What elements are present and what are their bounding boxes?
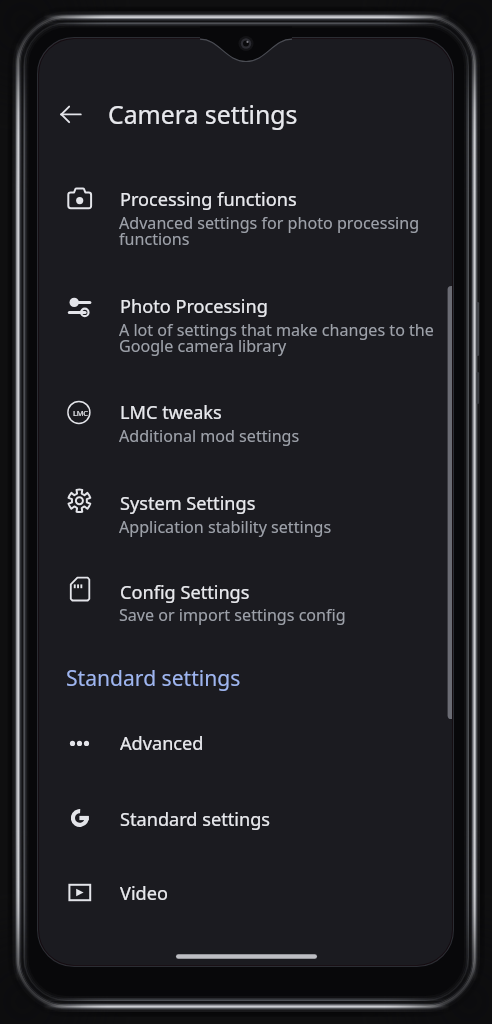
- button[interactable]: [44, 561, 440, 625]
- staticText: Camera settings: [108, 97, 452, 131]
- button[interactable]: [44, 279, 440, 365]
- button[interactable]: [44, 171, 440, 257]
- button[interactable]: [58, 659, 258, 699]
- staticText: Processing functions: [120, 187, 452, 212]
- staticText: Google camera library: [119, 335, 452, 357]
- staticText: Advanced settings for photo processing: [119, 212, 452, 234]
- button[interactable]: [44, 790, 440, 832]
- staticText: Advanced: [120, 731, 452, 756]
- staticText: Save or import settings config: [119, 604, 452, 626]
- staticText: Video: [120, 881, 452, 906]
- button[interactable]: [44, 715, 440, 757]
- button[interactable]: [44, 864, 440, 906]
- staticText: Standard settings: [120, 807, 452, 832]
- staticText: System Settings: [120, 491, 452, 516]
- staticText: A lot of settings that make changes to t…: [119, 319, 452, 341]
- staticText: Config Settings: [120, 580, 452, 605]
- staticText: LMC: [73, 408, 88, 418]
- button[interactable]: Navigate up: [48, 90, 96, 138]
- button[interactable]: [44, 385, 440, 449]
- staticText: LMC tweaks: [120, 400, 452, 425]
- staticText: Additional mod settings: [119, 425, 452, 447]
- staticText: Application stability settings: [119, 516, 452, 538]
- staticText: Standard settings: [66, 663, 426, 692]
- staticText: functions: [119, 228, 452, 250]
- staticText: Photo Processing: [120, 294, 452, 319]
- button[interactable]: [44, 473, 440, 537]
